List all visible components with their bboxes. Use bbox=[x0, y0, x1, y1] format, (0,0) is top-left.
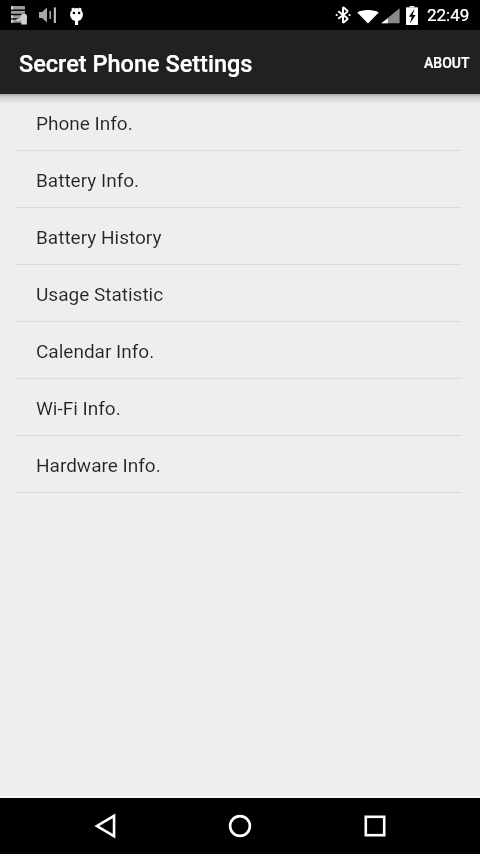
button[interactable]: Wi-Fi Info. bbox=[0, 379, 480, 436]
staticText: Calendar Info. bbox=[36, 340, 155, 362]
staticText: Secret Phone Settings bbox=[19, 50, 253, 78]
staticText: Hardware Info. bbox=[36, 454, 161, 476]
button[interactable]: Recents bbox=[299, 798, 451, 854]
button[interactable]: Home bbox=[181, 798, 299, 854]
button[interactable]: ABOUT bbox=[414, 30, 480, 94]
button[interactable]: Usage Statistic bbox=[0, 265, 480, 322]
button[interactable]: Phone Info. bbox=[0, 94, 480, 151]
staticText: Battery Info. bbox=[36, 169, 140, 191]
button[interactable]: Battery History bbox=[0, 208, 480, 265]
staticText: Usage Statistic bbox=[36, 283, 164, 305]
button[interactable]: Back bbox=[30, 798, 181, 854]
button[interactable]: Hardware Info. bbox=[0, 436, 480, 493]
staticText: 22:49 bbox=[427, 5, 470, 25]
button[interactable]: Battery Info. bbox=[0, 151, 480, 208]
button[interactable]: Calendar Info. bbox=[0, 322, 480, 379]
staticText: Battery History bbox=[36, 226, 162, 248]
staticText: Wi-Fi Info. bbox=[36, 397, 121, 419]
staticText: ABOUT bbox=[424, 55, 470, 71]
staticText: Phone Info. bbox=[36, 112, 133, 134]
